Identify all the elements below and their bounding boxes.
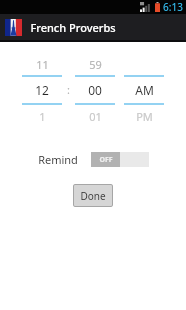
staticText: 00 [88,82,102,98]
staticText: : [67,82,70,97]
staticText: PM [136,109,153,124]
other: French Proverbs app icon [5,19,22,36]
button[interactable]: AM or PM [124,53,164,127]
staticText: 12 [35,82,49,98]
button[interactable]: Done [73,184,113,207]
button[interactable]: Minute [75,53,115,127]
staticText: 59 [89,57,102,72]
staticText: 1 [39,109,46,124]
button[interactable]: Remind toggle, off [91,152,149,167]
staticText: Remind [38,152,78,167]
staticText: French Proverbs [30,20,116,35]
button[interactable]: Hour [22,53,62,127]
staticText: 11 [36,57,49,72]
staticText: 01 [89,109,102,124]
staticText: OFF [99,155,113,165]
button[interactable]: French Proverbs app icon [0,14,186,40]
staticText: 6:13 [163,0,183,14]
staticText: Done [80,189,106,203]
staticText: AM [135,82,154,98]
